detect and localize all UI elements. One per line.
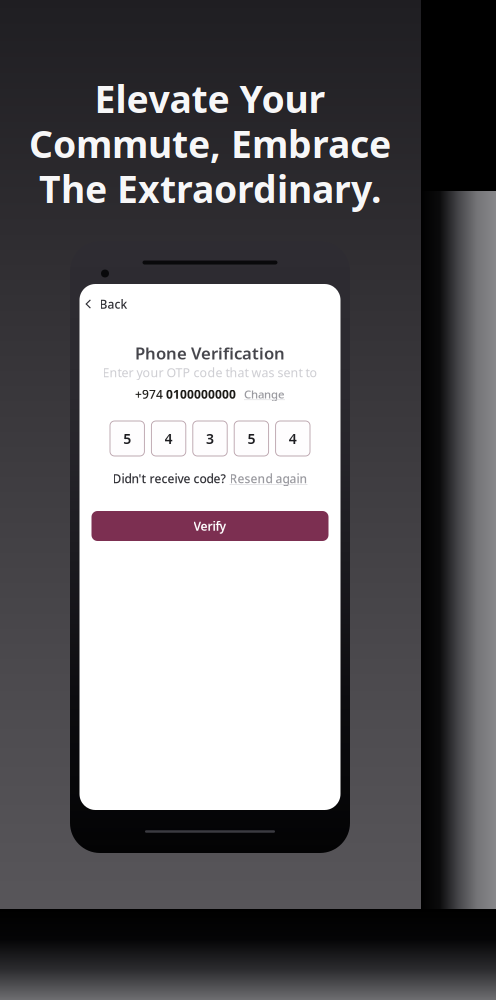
staticText: +974 0100000000 <box>135 386 236 402</box>
staticText: Back <box>100 296 128 312</box>
staticText: Commute, Embrace <box>29 118 391 169</box>
staticText: 5 <box>123 429 131 448</box>
staticText: 5 <box>247 429 255 448</box>
staticText: The Extraordinary. <box>39 163 381 214</box>
staticText: Verify <box>193 518 226 534</box>
staticText: 3 <box>206 429 214 448</box>
staticText: Didn't receive code? <box>112 470 225 487</box>
button[interactable]: 4 <box>276 421 310 456</box>
staticText: Resend again <box>229 470 307 487</box>
button[interactable]: Back <box>79 284 340 324</box>
staticText: 4 <box>289 429 297 448</box>
staticText: Phone Verification <box>135 342 285 364</box>
button[interactable]: 3 <box>193 421 227 456</box>
button[interactable]: 4 <box>151 421 186 456</box>
button[interactable]: Change <box>244 386 285 402</box>
button[interactable]: Resend again <box>229 470 307 487</box>
staticText: 4 <box>165 429 173 448</box>
button[interactable]: 5 <box>110 421 144 456</box>
button[interactable]: Verify <box>91 511 328 541</box>
staticText: Change <box>244 386 285 402</box>
staticText: Enter your OTP code that was sent to <box>102 364 317 381</box>
button[interactable]: 5 <box>234 421 269 456</box>
staticText: Elevate Your <box>94 73 325 124</box>
